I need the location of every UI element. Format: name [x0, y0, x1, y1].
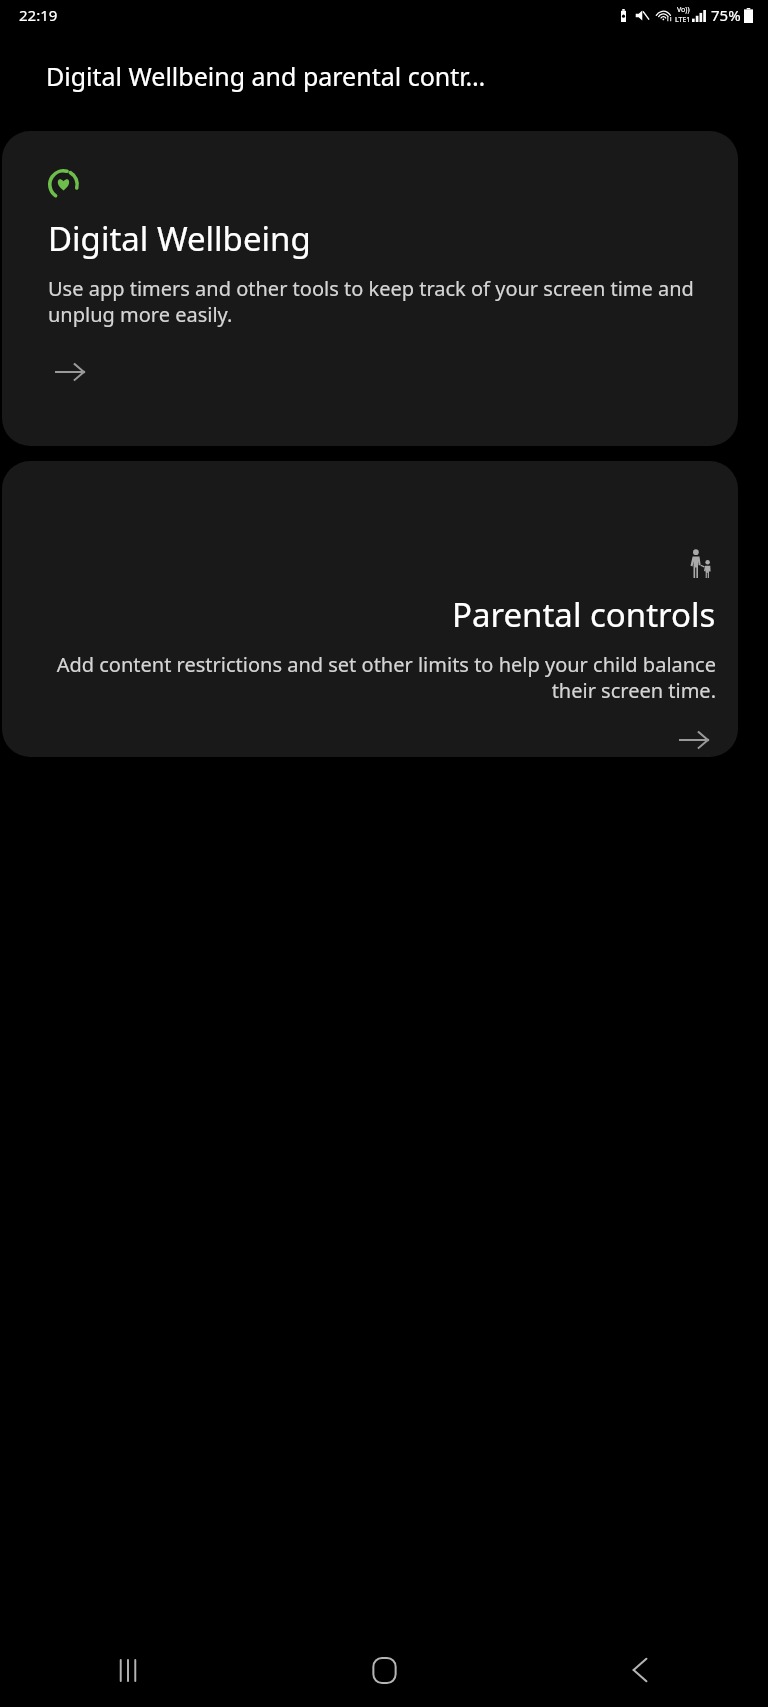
staticText: Vo)) [677, 5, 690, 15]
other: Open Digital Wellbeing [48, 350, 92, 394]
button[interactable]: Recent apps [0, 1633, 256, 1707]
staticText: LTE1 [675, 15, 691, 25]
staticText: 75% [711, 5, 741, 25]
staticText: Digital Wellbeing and parental contr… [46, 59, 748, 93]
button[interactable]: Parental controls [2, 461, 738, 757]
other: Open Parental controls [672, 722, 716, 757]
button[interactable]: Home [256, 1633, 512, 1707]
staticText: Add content restrictions and set other l… [26, 651, 716, 704]
staticText: Digital Wellbeing [48, 216, 311, 261]
button[interactable]: Digital Wellbeing [2, 131, 738, 446]
staticText: Use app timers and other tools to keep t… [48, 275, 714, 328]
staticText: 22:19 [19, 5, 58, 25]
staticText: Parental controls [452, 592, 716, 637]
button[interactable]: Back [512, 1633, 768, 1707]
